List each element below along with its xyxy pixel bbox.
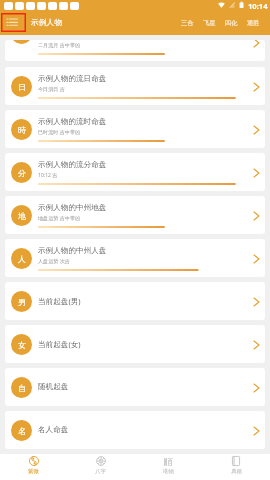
staticText: 飞星 [203, 19, 216, 27]
staticText: 二月流月 吉中带凶 [38, 42, 81, 49]
button[interactable]: 四化 [225, 19, 238, 27]
button[interactable]: 地 [5, 196, 265, 234]
button[interactable]: 三合 [181, 19, 194, 27]
staticText: 巳时流时 吉中带凶 [38, 129, 81, 136]
staticText: 地 [18, 211, 26, 221]
staticText: 紫微 [28, 468, 39, 475]
staticText: 示例人物的中州地盘 [38, 203, 107, 213]
staticText: 10:12 吉 [38, 172, 58, 179]
button[interactable]: 飞星 [203, 19, 216, 27]
staticText: 示例人物的流分命盘 [38, 160, 107, 170]
button[interactable]: 月 [5, 40, 265, 61]
button[interactable]: 順 [134, 454, 202, 480]
button[interactable]: 自 [5, 368, 265, 406]
staticText: 名 [18, 426, 26, 436]
button[interactable]: Menu [1, 13, 26, 32]
staticText: 10:14 [248, 1, 268, 11]
staticText: 今日消日 吉 [38, 86, 65, 93]
staticText: 人 [18, 254, 26, 264]
staticText: 四化 [225, 19, 238, 27]
staticText: 典籍 [231, 468, 242, 475]
button[interactable]: 人 [5, 239, 265, 277]
button[interactable]: 通胜 [247, 19, 260, 27]
staticText: 人盘运势 次吉 [38, 258, 70, 265]
staticText: 当前起盘(女) [38, 339, 81, 349]
staticText: 八字 [95, 468, 106, 475]
staticText: 名人命盘 [38, 425, 69, 435]
button[interactable]: 男 [5, 282, 265, 320]
button[interactable]: 紫微 [0, 454, 67, 480]
staticText: 示例人物的中州人盘 [38, 246, 107, 256]
staticText: 示例人物 [31, 17, 63, 27]
staticText: 自 [18, 383, 26, 393]
staticText: 随机起盘 [38, 382, 69, 392]
staticText: 示例人物的流日命盘 [38, 74, 107, 84]
staticText: 男 [18, 297, 26, 307]
staticText: 順 [163, 456, 173, 466]
staticText: 通胜 [247, 19, 260, 27]
button[interactable]: 分 [5, 153, 265, 191]
button[interactable]: 日 [5, 67, 265, 105]
button[interactable]: 女 [5, 325, 265, 363]
staticText: 地盘运势 吉中带凶 [38, 215, 81, 222]
staticText: 当前起盘(男) [38, 296, 81, 306]
staticText: 三合 [181, 19, 194, 27]
button[interactable]: 典籍 [202, 454, 270, 480]
staticText: 分 [18, 168, 26, 178]
staticText: 女 [18, 340, 26, 350]
staticText: 日 [18, 82, 26, 92]
button[interactable]: 八字 [67, 454, 134, 480]
button[interactable]: 時 [5, 110, 265, 148]
staticText: 時 [18, 125, 26, 135]
staticText: 堪物 [163, 468, 174, 475]
staticText: 示例人物的流时命盘 [38, 117, 107, 127]
button[interactable]: 名 [5, 411, 265, 449]
